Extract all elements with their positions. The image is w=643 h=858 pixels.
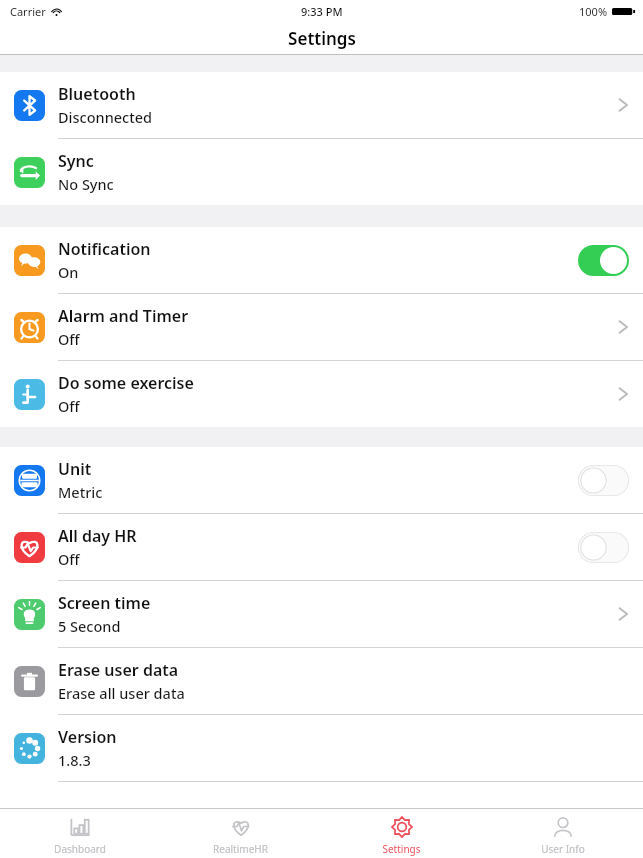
staticText: 100% <box>579 4 608 19</box>
staticText: Erase all user data <box>58 683 185 703</box>
staticText: Erase user data <box>58 659 179 681</box>
button[interactable]: Bluetooth <box>0 72 643 138</box>
button[interactable]: Screen time <box>0 581 643 647</box>
staticText: 9:33 PM <box>301 4 343 19</box>
button[interactable]: All day HR <box>0 514 643 580</box>
staticText: Off <box>58 396 80 416</box>
button[interactable]: Dashboard <box>0 809 160 858</box>
staticText: RealtimeHR <box>213 842 268 856</box>
staticText: Off <box>58 549 80 569</box>
button[interactable]: Toggle off <box>578 532 629 563</box>
button[interactable]: Settings <box>321 809 482 858</box>
staticText: Version <box>58 726 117 748</box>
button[interactable]: Sync <box>0 139 643 205</box>
staticText: No Sync <box>58 174 114 194</box>
button[interactable]: Alarm and Timer <box>0 294 643 360</box>
button[interactable]: Do some exercise <box>0 361 643 427</box>
staticText: Bluetooth <box>58 83 136 105</box>
staticText: Do some exercise <box>58 372 194 394</box>
staticText: Dashboard <box>54 842 106 856</box>
staticText: Off <box>58 329 80 349</box>
staticText: User Info <box>541 842 585 856</box>
staticText: Settings <box>288 27 356 50</box>
staticText: Disconnected <box>58 107 153 127</box>
button[interactable]: Notification <box>0 227 643 293</box>
staticText: Alarm and Timer <box>58 305 189 327</box>
staticText: 5 Second <box>58 616 121 636</box>
staticText: Notification <box>58 238 151 260</box>
staticText: All day HR <box>58 525 137 547</box>
staticText: Sync <box>58 150 94 172</box>
button[interactable]: Erase user data <box>0 648 643 714</box>
button[interactable]: Version <box>0 715 643 781</box>
button[interactable]: Toggle off <box>578 465 629 496</box>
staticText: Screen time <box>58 592 151 614</box>
staticText: Carrier <box>10 4 46 19</box>
staticText: Settings <box>382 842 421 856</box>
staticText: Metric <box>58 482 103 502</box>
staticText: On <box>58 262 79 282</box>
button[interactable]: RealtimeHR <box>160 809 321 858</box>
staticText: 1.8.3 <box>58 750 91 770</box>
button[interactable]: Unit <box>0 447 643 513</box>
button[interactable]: User Info <box>482 809 643 858</box>
staticText: Unit <box>58 458 92 480</box>
button[interactable]: Toggle on <box>578 245 629 276</box>
